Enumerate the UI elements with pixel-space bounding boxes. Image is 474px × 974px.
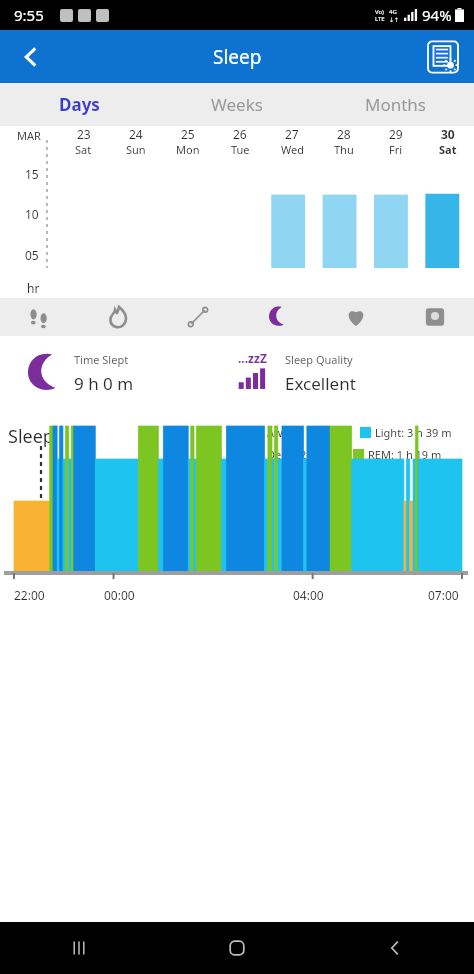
staticText: ...zzZ — [238, 350, 267, 366]
staticText: Thu — [334, 142, 354, 157]
staticText: 04:00 — [293, 587, 324, 603]
staticText: Mon — [176, 142, 200, 157]
staticText: 00:00 — [104, 587, 135, 603]
staticText: 25 — [181, 126, 195, 142]
staticText: Wed — [281, 142, 304, 157]
staticText: 26 — [233, 126, 247, 142]
staticText: Sleep Quality — [285, 352, 353, 367]
staticText: 29 — [389, 126, 403, 142]
button[interactable]: Distance — [158, 298, 237, 336]
staticText: 24 — [129, 126, 143, 142]
button[interactable]: Sleep Quality — [237, 336, 474, 410]
staticText: Days — [59, 93, 100, 116]
button[interactable]: Back — [8, 34, 54, 80]
staticText: 10 — [25, 206, 39, 222]
staticText: Sleep — [8, 424, 54, 449]
staticText: MAR — [17, 128, 41, 143]
staticText: REM: 1 h 19 m — [368, 447, 442, 462]
staticText: Sun — [126, 142, 146, 157]
button[interactable]: Weight — [395, 298, 474, 336]
staticText: 28 — [337, 126, 351, 142]
staticText: Deep: 2 h 45 m — [267, 447, 345, 462]
staticText: 23 — [77, 126, 91, 142]
staticText: 4G ↓↑ — [389, 8, 400, 23]
staticText: 15 — [25, 166, 39, 182]
staticText: Fri — [389, 142, 403, 157]
staticText: 9 h 0 m — [74, 372, 134, 395]
staticText: 22:00 — [14, 587, 45, 603]
staticText: 05 — [25, 247, 39, 263]
button[interactable]: Days — [0, 83, 158, 126]
staticText: Tue — [231, 142, 250, 157]
button[interactable]: Weeks — [158, 83, 316, 126]
staticText: 94% — [422, 5, 452, 25]
button[interactable]: Months — [316, 83, 474, 126]
button[interactable]: Report — [420, 34, 466, 80]
staticText: 9:55 — [14, 5, 44, 25]
staticText: hr — [27, 280, 40, 296]
button[interactable]: REM: 1 h 19 m — [353, 447, 442, 462]
button[interactable]: Back — [316, 922, 474, 974]
button[interactable]: Calories — [79, 298, 158, 336]
staticText: Months — [365, 93, 426, 116]
button[interactable]: Deep: 2 h 45 m — [252, 447, 345, 462]
staticText: Awake: 1 h 17 m — [267, 425, 352, 440]
staticText: 07:00 — [428, 587, 459, 603]
staticText: Sat — [75, 142, 92, 157]
button[interactable]: Steps — [0, 298, 79, 336]
button[interactable]: Recents — [0, 922, 158, 974]
staticText: Vo) LTE — [375, 8, 385, 23]
staticText: Sat — [439, 142, 457, 157]
staticText: 30 — [441, 126, 455, 142]
staticText: 27 — [285, 126, 299, 142]
staticText: Excellent — [285, 372, 356, 395]
staticText: Light: 3 h 39 m — [375, 425, 452, 440]
button[interactable]: Sleep — [237, 298, 316, 336]
staticText: Weeks — [211, 93, 263, 116]
staticText: Sleep — [213, 44, 262, 70]
button[interactable]: Time Slept — [0, 336, 237, 410]
staticText: Time Slept — [74, 352, 129, 367]
button[interactable]: Awake: 1 h 17 m — [252, 425, 352, 440]
button[interactable]: Light: 3 h 39 m — [360, 425, 452, 440]
button[interactable]: Home — [158, 922, 316, 974]
button[interactable]: Heart rate — [316, 298, 395, 336]
